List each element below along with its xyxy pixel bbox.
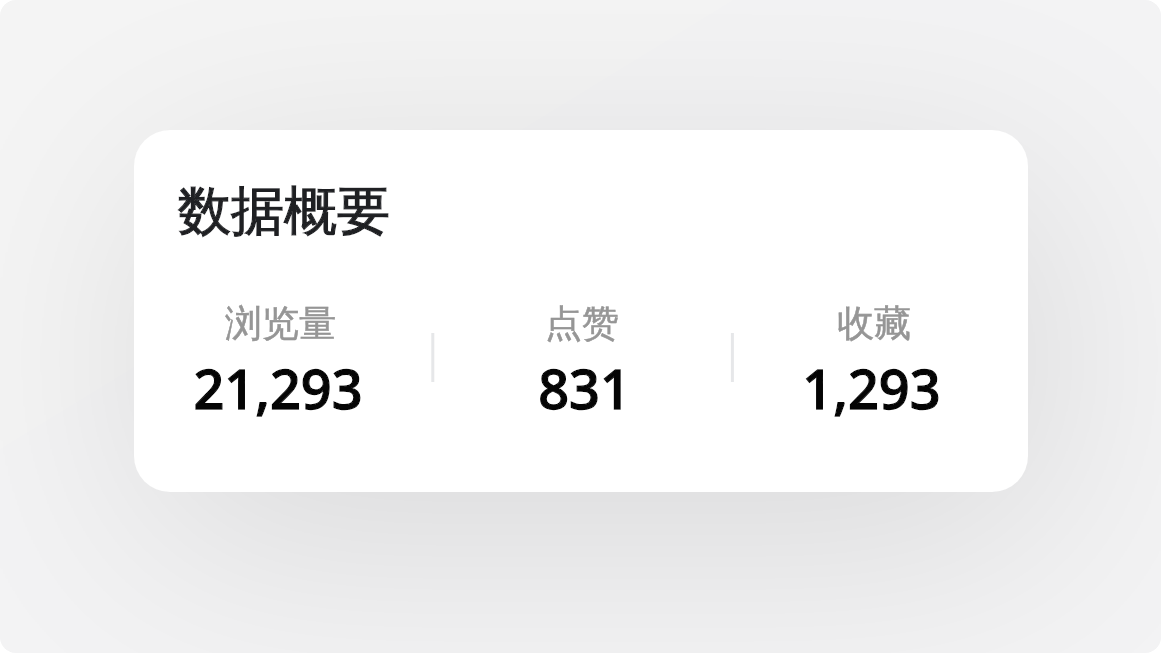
button[interactable]: 收藏	[722, 300, 1020, 421]
staticText: 831	[538, 351, 631, 425]
staticText: 1,293	[802, 351, 941, 425]
staticText: 21,293	[193, 351, 363, 425]
staticText: 浏览量	[225, 300, 336, 347]
staticText: 浏览量	[225, 300, 336, 347]
staticText: 1,293	[802, 351, 941, 425]
staticText: 点赞	[545, 300, 619, 347]
staticText: 831	[538, 351, 631, 425]
staticText: 数据概要	[178, 178, 390, 245]
staticText: 收藏	[837, 300, 911, 347]
button[interactable]: 数据概要	[134, 130, 1028, 492]
staticText: 21,293	[193, 351, 363, 425]
button[interactable]: 浏览量	[134, 300, 427, 421]
staticText: 数据概要	[178, 178, 390, 245]
staticText: 收藏	[837, 300, 911, 347]
staticText: 点赞	[545, 300, 619, 347]
button[interactable]: 点赞	[435, 300, 733, 421]
